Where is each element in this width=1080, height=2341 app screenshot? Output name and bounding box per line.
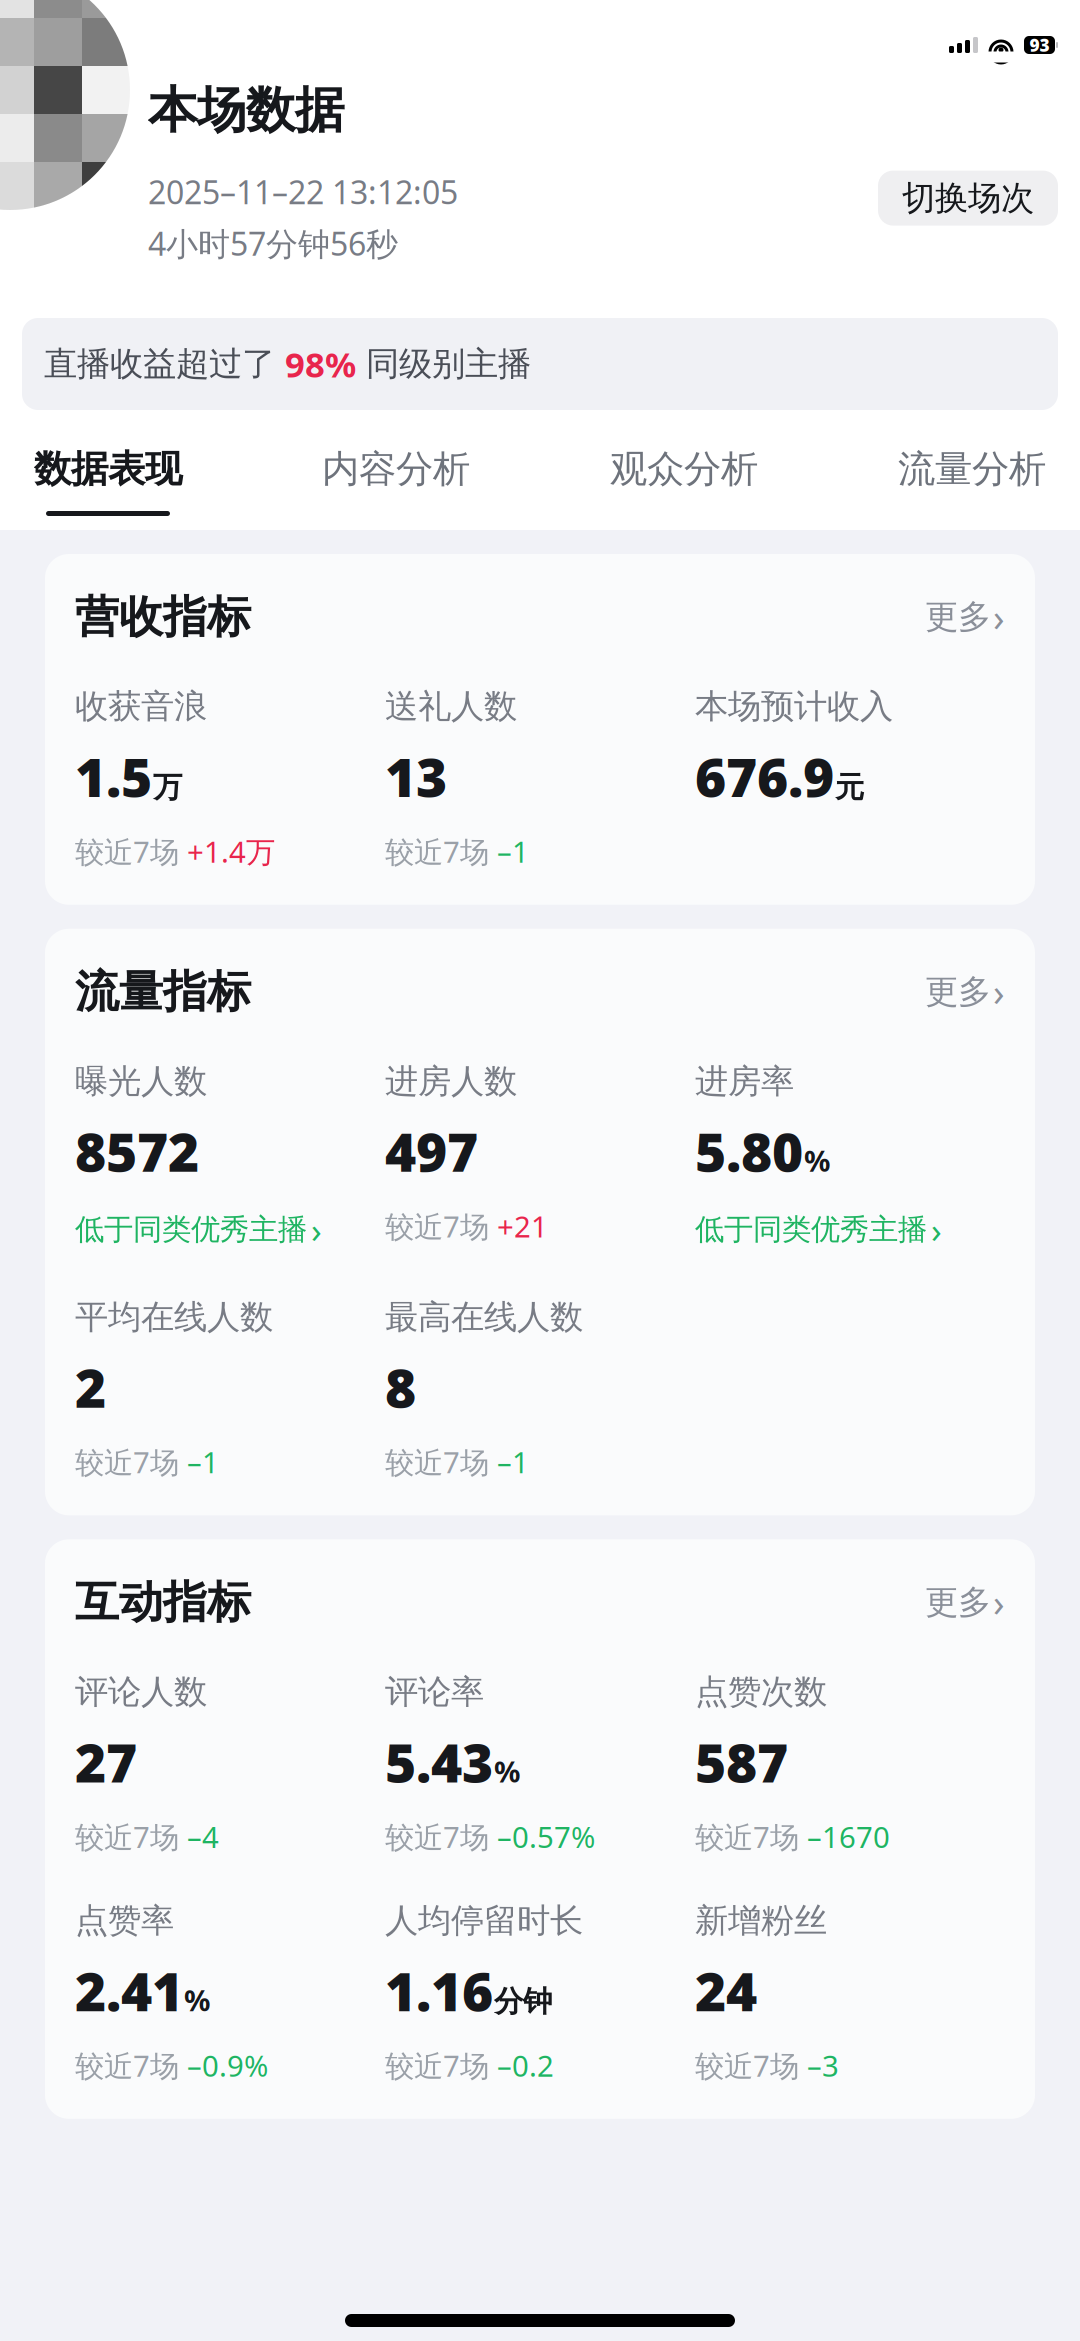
staticText: 观众分析: [610, 446, 758, 492]
staticText: –1: [497, 1442, 529, 1481]
staticText: 2025–11–22 13:12:05: [148, 171, 458, 213]
staticText: 直播收益超过了: [44, 343, 285, 384]
staticText: –3: [807, 2046, 839, 2085]
staticText: 更多: [925, 1582, 991, 1623]
staticText: 较近7场: [75, 832, 179, 871]
staticText: –1670: [807, 1817, 890, 1856]
staticText: 4小时57分钟56秒: [148, 222, 398, 265]
staticText: 较近7场: [385, 1442, 489, 1481]
staticText: 流量指标: [75, 965, 251, 1019]
staticText: 人均停留时长: [385, 1900, 583, 1941]
staticText: 切换场次: [902, 178, 1034, 218]
staticText: 评论人数: [75, 1671, 207, 1712]
staticText: 5.80: [695, 1116, 803, 1187]
staticText: 万: [153, 769, 182, 805]
staticText: 更多: [925, 597, 991, 637]
staticText: ›: [993, 592, 1005, 642]
staticText: 98%: [285, 341, 356, 387]
staticText: –1: [187, 1442, 219, 1481]
staticText: 较近7场: [385, 1817, 489, 1856]
staticText: 较近7场: [385, 1207, 489, 1246]
staticText: –0.9%: [187, 2046, 268, 2085]
staticText: ›: [993, 967, 1005, 1017]
staticText: 本场预计收入: [695, 686, 893, 727]
staticText: 较近7场: [385, 832, 489, 871]
staticText: 8572: [75, 1116, 199, 1187]
button[interactable]: 数据表现: [18, 444, 198, 516]
staticText: 本场数据: [148, 80, 344, 141]
staticText: ›: [931, 1207, 942, 1253]
staticText: 送礼人数: [385, 686, 517, 727]
staticText: 较近7场: [695, 1817, 799, 1856]
staticText: 平均在线人数: [75, 1297, 273, 1337]
staticText: ›: [993, 1578, 1005, 1627]
staticText: 曝光人数: [75, 1061, 207, 1102]
staticText: –1: [497, 832, 529, 871]
staticText: 营收指标: [75, 590, 251, 644]
staticText: %: [184, 1980, 210, 2019]
button[interactable]: 更多: [925, 1578, 1005, 1627]
staticText: +21: [497, 1207, 548, 1246]
staticText: 进房人数: [385, 1061, 517, 1102]
button[interactable]: 低于同类优秀主播: [75, 1207, 322, 1253]
button[interactable]: 内容分析: [306, 444, 486, 516]
staticText: 1.5: [75, 741, 152, 812]
staticText: +1.4万: [187, 832, 275, 871]
staticText: 进房率: [695, 1061, 794, 1102]
staticText: 点赞次数: [695, 1671, 827, 1712]
staticText: 内容分析: [322, 446, 470, 492]
staticText: 分钟: [494, 1983, 552, 2019]
button[interactable]: 切换场次: [878, 171, 1058, 226]
staticText: 点赞率: [75, 1900, 174, 1941]
staticText: %: [494, 1752, 520, 1791]
staticText: %: [804, 1141, 830, 1180]
staticText: 低于同类优秀主播: [75, 1212, 307, 1248]
staticText: 评论率: [385, 1671, 484, 1712]
button[interactable]: 观众分析: [594, 444, 774, 516]
staticText: 8: [385, 1352, 416, 1422]
button[interactable]: 流量分析: [882, 444, 1062, 516]
staticText: 数据表现: [34, 446, 182, 492]
staticText: –0.57%: [497, 1817, 595, 1856]
staticText: 2.41: [75, 1955, 183, 2026]
staticText: 较近7场: [75, 2046, 179, 2085]
staticText: 互动指标: [75, 1575, 251, 1629]
staticText: 1.16: [385, 1955, 493, 2026]
staticText: 较近7场: [75, 1442, 179, 1481]
button[interactable]: 低于同类优秀主播: [695, 1207, 942, 1253]
staticText: 同级别主播: [356, 343, 531, 384]
button[interactable]: 更多: [925, 967, 1005, 1017]
staticText: 低于同类优秀主播: [695, 1212, 927, 1248]
staticText: 最高在线人数: [385, 1297, 583, 1337]
staticText: 元: [835, 769, 864, 805]
staticText: 497: [385, 1116, 478, 1187]
staticText: –4: [187, 1817, 219, 1856]
staticText: 更多: [925, 971, 991, 1012]
staticText: 24: [695, 1955, 757, 2026]
staticText: –0.2: [497, 2046, 554, 2085]
staticText: 较近7场: [385, 2046, 489, 2085]
staticText: 587: [695, 1726, 788, 1797]
staticText: 2: [75, 1352, 106, 1422]
staticText: 93: [1029, 33, 1049, 56]
staticText: 较近7场: [695, 2046, 799, 2085]
staticText: 5.43: [385, 1726, 493, 1797]
staticText: 新增粉丝: [695, 1900, 827, 1941]
staticText: 27: [75, 1726, 137, 1797]
staticText: 较近7场: [75, 1817, 179, 1856]
staticText: 流量分析: [898, 446, 1046, 492]
staticText: 收获音浪: [75, 686, 207, 727]
staticText: 676.9: [695, 741, 834, 812]
button[interactable]: 更多: [925, 592, 1005, 642]
staticText: 13: [385, 741, 447, 812]
staticText: ›: [311, 1207, 322, 1253]
